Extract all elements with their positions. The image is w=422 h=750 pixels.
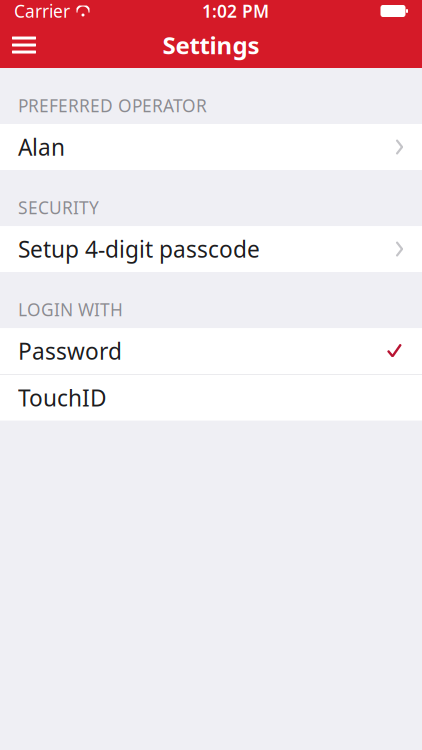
staticText: Alan xyxy=(18,132,65,162)
staticText: 1:02 PM xyxy=(202,0,269,22)
button[interactable]: Setup 4-digit passcode xyxy=(0,226,422,272)
staticText: Password xyxy=(18,336,122,366)
button[interactable]: Menu xyxy=(2,23,46,67)
staticText: TouchID xyxy=(18,383,107,413)
staticText: LOGIN WITH xyxy=(18,298,123,321)
button[interactable]: TouchID xyxy=(0,375,422,421)
staticText: Settings xyxy=(162,29,259,61)
staticText: SECURITY xyxy=(18,196,99,219)
staticText: Setup 4-digit passcode xyxy=(18,234,260,264)
button[interactable]: Password xyxy=(0,328,422,374)
button[interactable]: Alan xyxy=(0,124,422,170)
staticText: PREFERRED OPERATOR xyxy=(18,94,207,117)
staticText: Carrier xyxy=(14,0,70,22)
